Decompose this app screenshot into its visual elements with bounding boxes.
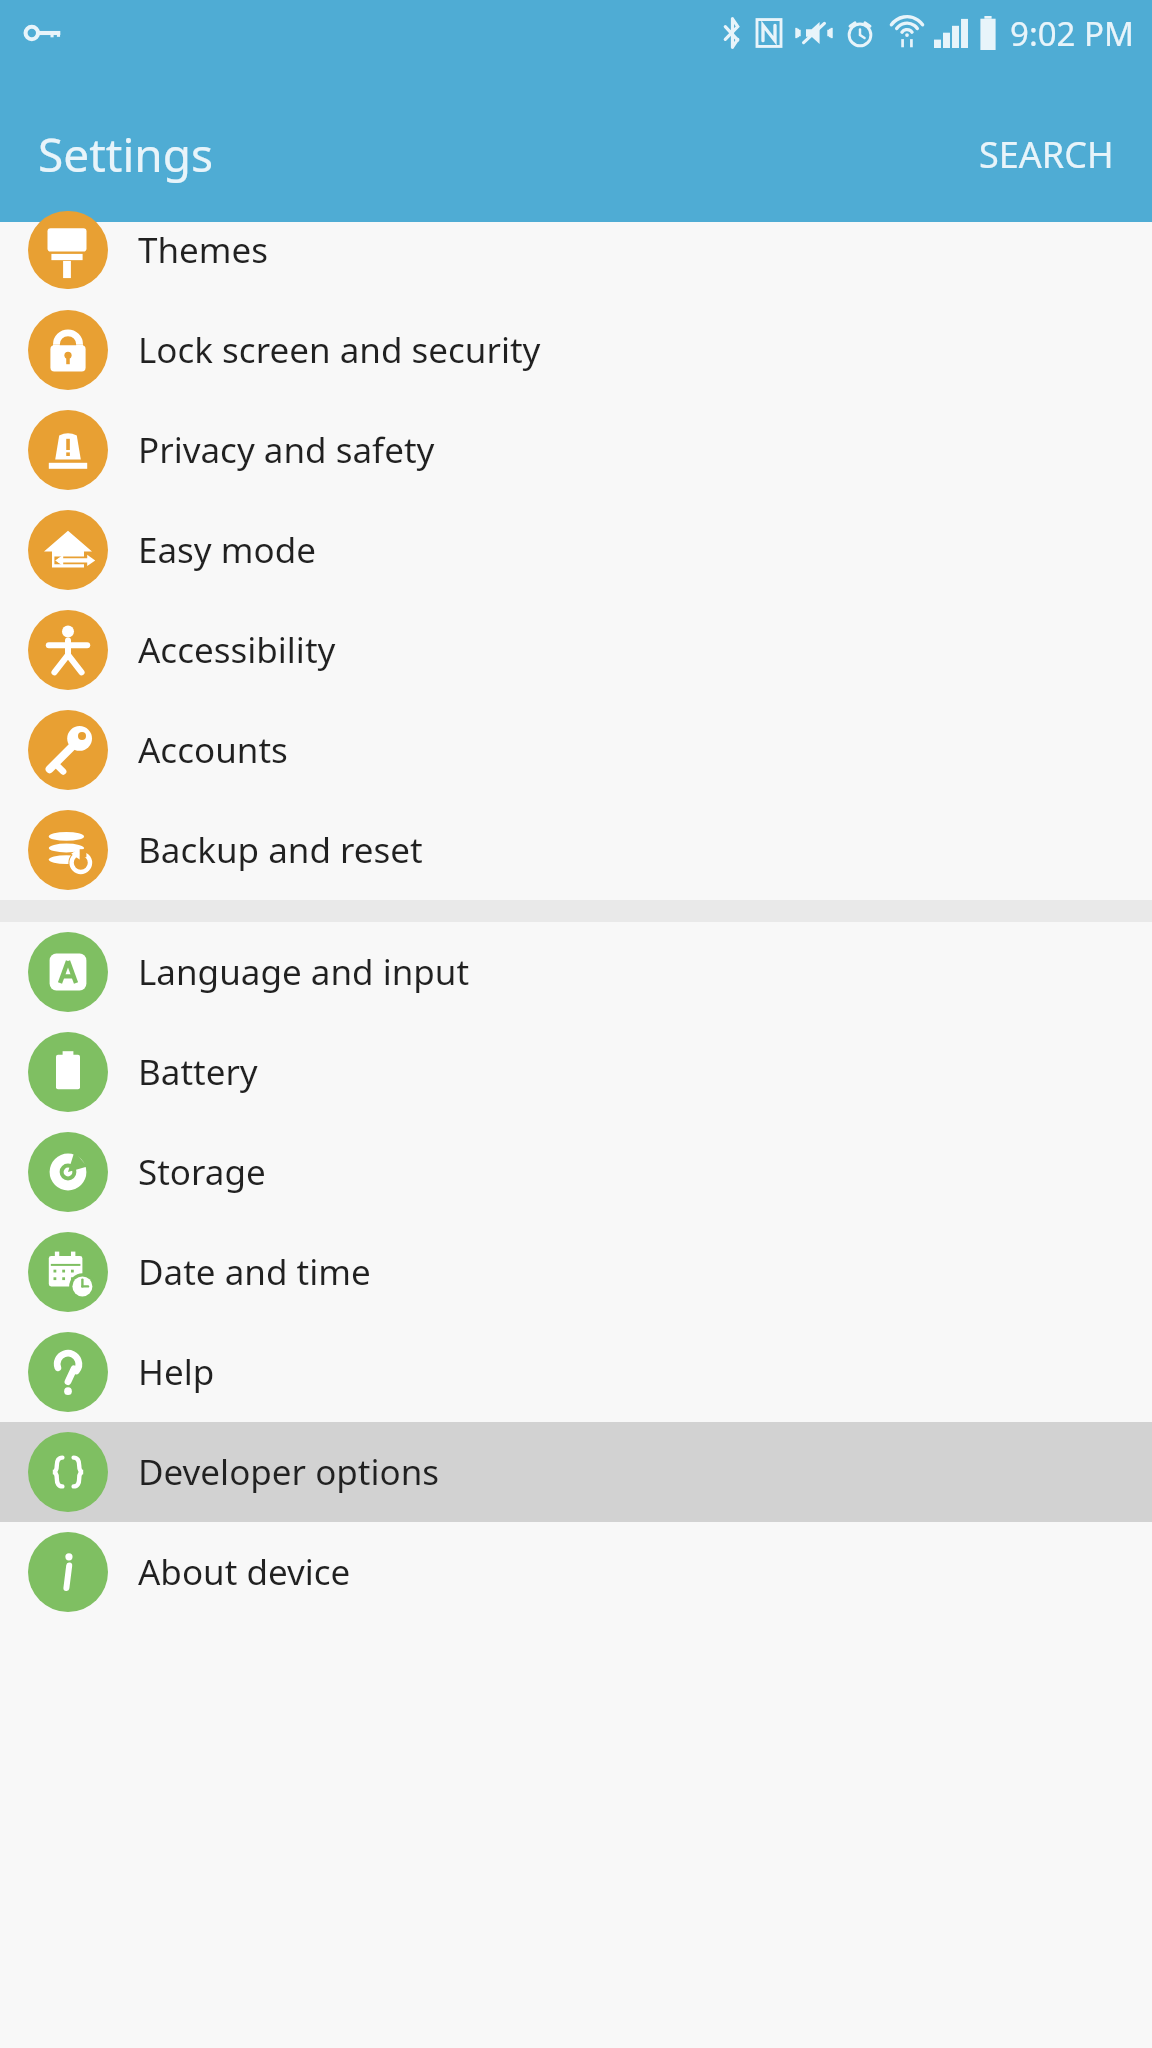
button[interactable]: Storage [0, 1122, 1152, 1222]
button[interactable]: Language and input [0, 922, 1152, 1022]
button[interactable]: Accessibility [0, 600, 1152, 700]
staticText: Themes [138, 226, 269, 274]
staticText: Date and time [138, 1248, 371, 1296]
staticText: Accessibility [138, 626, 336, 674]
staticText: Easy mode [138, 526, 316, 574]
staticText: Battery [138, 1048, 258, 1096]
button[interactable]: SEARCH [979, 130, 1114, 179]
staticText: Privacy and safety [138, 426, 435, 474]
staticText: SEARCH [979, 130, 1114, 179]
staticText: Language and input [138, 948, 470, 996]
button[interactable]: About device [0, 1522, 1152, 1622]
staticText: Accounts [138, 726, 288, 774]
button[interactable]: Help [0, 1322, 1152, 1422]
button[interactable]: Privacy and safety [0, 400, 1152, 500]
button[interactable]: Themes [0, 222, 1152, 300]
staticText: Backup and reset [138, 826, 423, 874]
button[interactable]: Date and time [0, 1222, 1152, 1322]
button[interactable]: Easy mode [0, 500, 1152, 600]
staticText: Developer options [138, 1448, 440, 1496]
button[interactable]: Accounts [0, 700, 1152, 800]
staticText: About device [138, 1548, 351, 1596]
staticText: Storage [138, 1148, 266, 1196]
button[interactable]: Lock screen and security [0, 300, 1152, 400]
button[interactable]: Battery [0, 1022, 1152, 1122]
staticText: Help [138, 1348, 215, 1396]
staticText: Settings [38, 123, 214, 186]
staticText: Lock screen and security [138, 326, 541, 374]
staticText: 9:02 PM [1010, 11, 1134, 56]
button[interactable]: Backup and reset [0, 800, 1152, 900]
button[interactable]: Developer options [0, 1422, 1152, 1522]
